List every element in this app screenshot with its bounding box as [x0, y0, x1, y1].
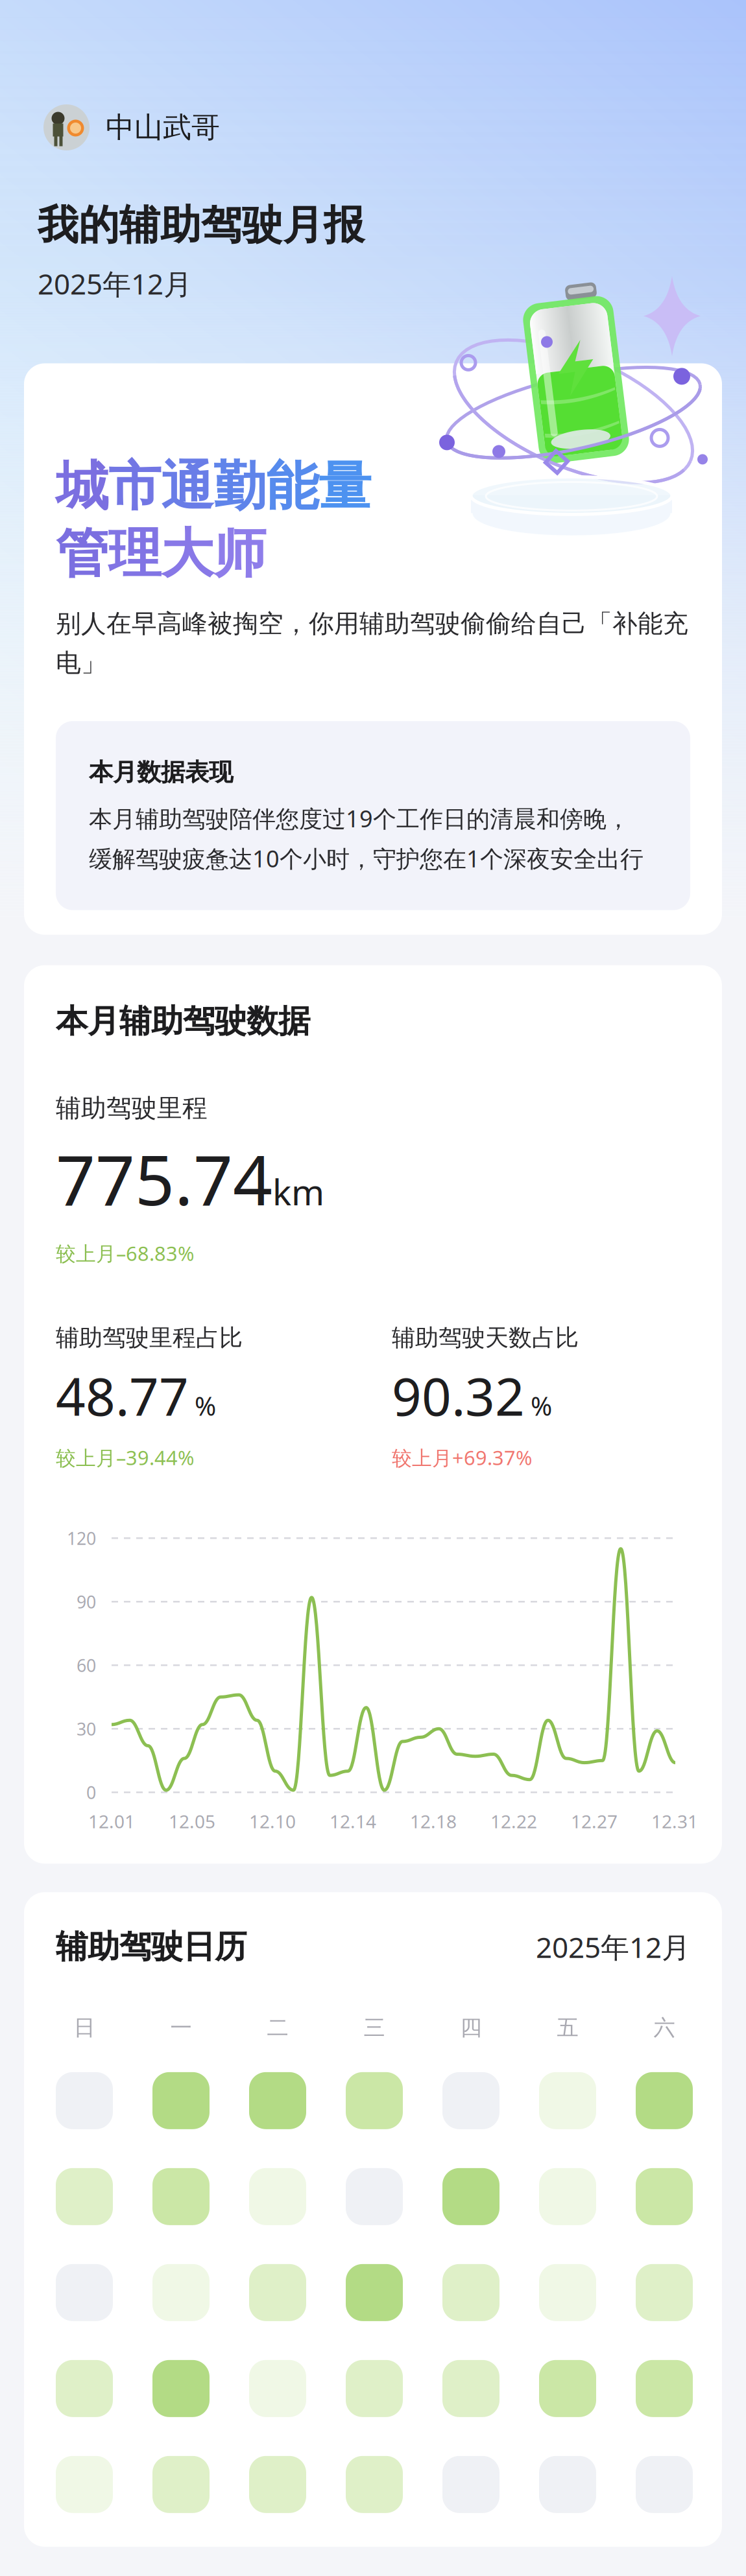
staticText: 48.77	[56, 1361, 189, 1430]
staticText: 日	[74, 2014, 95, 2041]
staticText: 四	[460, 2014, 482, 2041]
staticText: 12.27	[571, 1809, 618, 1833]
staticText: 城	[56, 454, 108, 519]
staticText: 60	[77, 1654, 96, 1677]
staticText: 较上月–68.83%	[56, 1240, 194, 1266]
staticText: 一	[170, 2014, 192, 2041]
staticText: 本月辅助驾驶数据	[56, 1002, 310, 1041]
staticText: 较上月+69.37%	[392, 1444, 532, 1471]
staticText: 辅助驾驶天数占比	[392, 1323, 579, 1352]
staticText: 12.10	[249, 1809, 296, 1833]
staticText: 二	[267, 2014, 288, 2041]
staticText: 通	[161, 454, 213, 519]
staticText: 别人在早高峰被掏空，你用辅助驾驶偷偷给自己「补能充电」	[56, 608, 688, 678]
staticText: 辅助驾驶日历	[56, 1927, 247, 1966]
staticText: 12.14	[330, 1809, 376, 1833]
staticText: 12.18	[410, 1809, 457, 1833]
staticText: 12.01	[88, 1809, 135, 1833]
staticText: 2025年12月	[536, 1928, 690, 1966]
staticText: 本月数据表现	[89, 757, 233, 787]
staticText: %	[195, 1388, 216, 1423]
staticText: 90	[77, 1590, 96, 1613]
staticText: km	[272, 1168, 324, 1215]
staticText: 30	[77, 1717, 96, 1740]
button[interactable]: 中山武哥	[0, 104, 249, 150]
staticText: 管	[56, 521, 108, 586]
staticText: 市	[108, 454, 161, 519]
staticText: 勤	[213, 454, 266, 519]
staticText: 12.05	[169, 1809, 215, 1833]
staticText: 五	[557, 2014, 578, 2041]
staticText: 2025年12月	[38, 265, 192, 302]
staticText: 能	[266, 454, 319, 519]
staticText: 90.32	[392, 1361, 525, 1430]
staticText: 775.74	[56, 1133, 272, 1224]
staticText: %	[531, 1388, 552, 1423]
staticText: 辅助驾驶里程占比	[56, 1323, 243, 1352]
staticText: 辅助驾驶里程	[56, 1093, 208, 1124]
staticText: 六	[654, 2014, 675, 2041]
staticText: 本月辅助驾驶陪伴您度过19个工作日的清晨和傍晚，缓解驾驶疲惫达10个小时，守护您…	[89, 803, 644, 874]
staticText: 量	[319, 454, 371, 519]
staticText: 师	[213, 521, 266, 586]
staticText: 120	[67, 1527, 96, 1550]
staticText: 中山武哥	[106, 110, 220, 145]
staticText: 理	[108, 521, 161, 586]
staticText: 12.22	[490, 1809, 537, 1833]
staticText: 12.31	[651, 1809, 698, 1833]
staticText: 我的辅助驾驶月报	[38, 200, 365, 250]
staticText: 较上月–39.44%	[56, 1444, 194, 1471]
staticText: 0	[86, 1781, 96, 1804]
staticText: 大	[161, 521, 213, 586]
staticText: 三	[364, 2014, 385, 2041]
